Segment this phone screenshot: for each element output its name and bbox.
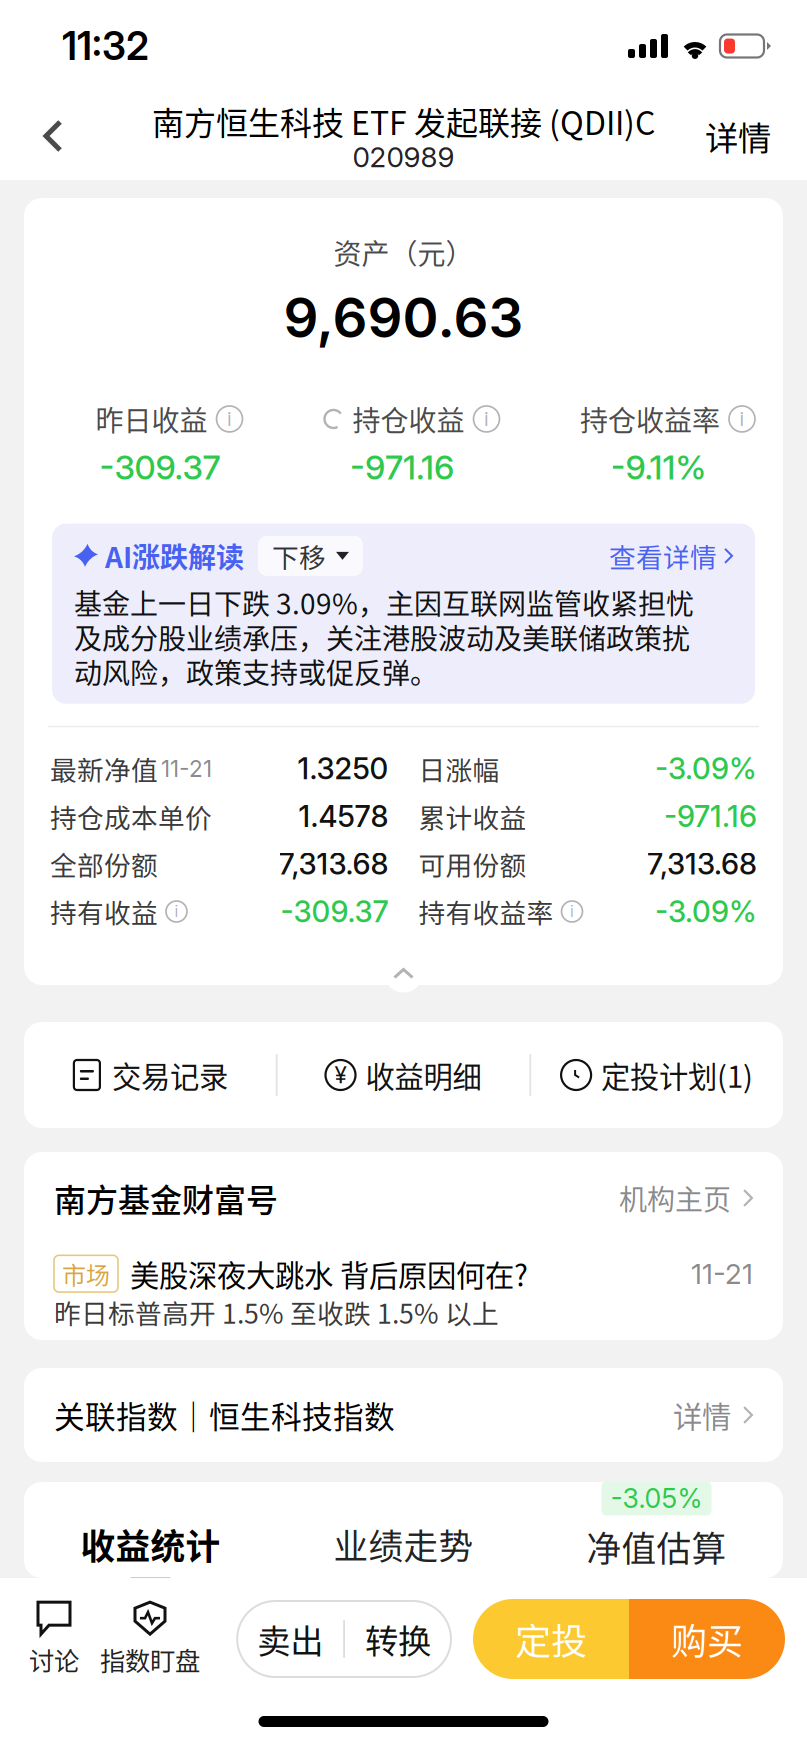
staticText: 持仓收益: [352, 399, 464, 439]
button[interactable]: 讨论: [10, 1595, 98, 1683]
staticText: -3.05%: [610, 1482, 702, 1515]
button[interactable]: 收起: [379, 953, 427, 992]
staticText: 动风险，政策支持或促反弹。: [74, 651, 438, 692]
staticText: 转换: [365, 1615, 431, 1663]
staticText: 下移: [272, 536, 326, 575]
staticText: -971.16: [350, 447, 454, 487]
staticText: -309.37: [280, 894, 388, 929]
staticText: 关联指数｜恒生科技指数: [54, 1393, 395, 1437]
staticText: 1.3250: [297, 751, 388, 786]
staticText: 定投计划(1): [601, 1054, 753, 1096]
staticText: 基金上一日下跌 3.09%，主因互联网监管收紧担忧: [74, 582, 694, 623]
button[interactable]: 详情: [687, 92, 807, 180]
staticText: -3.09%: [655, 894, 757, 929]
staticText: -3.09%: [655, 751, 757, 786]
staticText: 昨日收益: [95, 399, 207, 439]
staticText: 持仓成本单价: [50, 797, 212, 836]
staticText: 收益明细: [365, 1054, 481, 1096]
staticText: -971.16: [664, 798, 757, 834]
staticText: 详情: [673, 1394, 731, 1436]
staticText: -309.37: [99, 447, 220, 487]
staticText: 南方恒生科技 ETF 发起联接 (QDII)C: [152, 98, 655, 144]
button[interactable]: 下移: [258, 536, 363, 576]
button[interactable]: 市场: [24, 1244, 783, 1340]
staticText: 南方基金财富号: [54, 1175, 278, 1221]
staticText: 资产（元）: [333, 232, 473, 272]
staticText: 7,313.68: [278, 846, 388, 882]
button[interactable]: 关联指数｜恒生科技指数: [24, 1368, 783, 1462]
staticText: 可用份额: [418, 845, 526, 883]
staticText: 最新净值: [50, 749, 158, 788]
staticText: 详情: [705, 112, 771, 160]
staticText: -9.11%: [610, 447, 706, 487]
button[interactable]: 卖出: [237, 1601, 343, 1677]
staticText: i: [739, 407, 744, 430]
staticText: 全部份额: [50, 845, 158, 883]
button[interactable]: 转换: [345, 1601, 451, 1677]
staticText: AI涨跌解读: [105, 536, 244, 576]
button[interactable]: ¥: [278, 1022, 529, 1128]
staticText: 业绩走势: [333, 1519, 473, 1570]
staticText: 机构主页: [619, 1178, 731, 1218]
staticText: 9,690.63: [283, 284, 523, 351]
staticText: 1.4578: [298, 798, 388, 834]
staticText: ¥: [334, 1061, 346, 1089]
button[interactable]: 返回: [0, 92, 88, 180]
staticText: 指数盯盘: [100, 1641, 200, 1678]
staticText: 7,313.68: [647, 846, 757, 882]
button[interactable]: 购买: [629, 1599, 785, 1679]
staticText: 定投: [515, 1613, 587, 1665]
button[interactable]: 南方基金财富号: [24, 1152, 783, 1244]
staticText: 交易记录: [112, 1054, 228, 1096]
button[interactable]: 业绩走势: [277, 1475, 530, 1585]
staticText: 020989: [352, 140, 454, 174]
button[interactable]: 定投: [473, 1599, 629, 1679]
staticText: i: [570, 902, 574, 921]
staticText: 查看详情: [609, 536, 717, 575]
staticText: 日涨幅: [418, 749, 499, 788]
staticText: 累计收益: [418, 797, 526, 836]
button[interactable]: -3.05%: [530, 1473, 783, 1587]
staticText: 及成分股业绩承压，关注港股波动及美联储政策扰: [74, 617, 690, 657]
staticText: 持有收益率: [418, 892, 553, 931]
staticText: 11-21: [691, 1257, 753, 1291]
button[interactable]: 交易记录: [24, 1022, 276, 1128]
staticText: 收益统计: [80, 1519, 220, 1570]
staticText: i: [484, 407, 489, 430]
staticText: 11-21: [161, 755, 212, 782]
staticText: 持有收益: [50, 892, 158, 931]
staticText: i: [174, 902, 178, 921]
staticText: 美股深夜大跳水 背后原因何在?: [130, 1252, 528, 1295]
staticText: 卖出: [257, 1615, 323, 1663]
button[interactable]: 指数盯盘: [98, 1595, 202, 1683]
staticText: 11:32: [62, 23, 149, 69]
staticText: i: [227, 407, 232, 430]
staticText: 市场: [62, 1256, 110, 1291]
staticText: 昨日标普高开 1.5% 至收跌 1.5% 以上: [54, 1293, 499, 1331]
button[interactable]: 查看详情: [609, 536, 733, 575]
staticText: 持仓收益率: [580, 399, 720, 439]
button[interactable]: 收益统计: [24, 1475, 277, 1585]
staticText: 净值估算: [586, 1521, 726, 1572]
staticText: 购买: [671, 1613, 743, 1665]
button[interactable]: 定投计划(1): [531, 1022, 783, 1128]
staticText: 讨论: [29, 1641, 79, 1678]
